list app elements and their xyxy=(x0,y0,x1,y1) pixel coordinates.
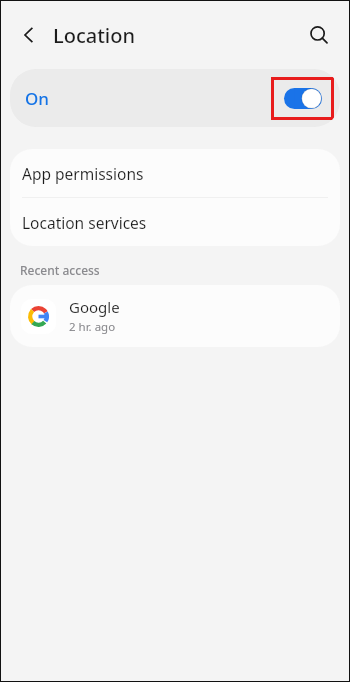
button[interactable]: Location services xyxy=(10,198,340,246)
button[interactable]: On xyxy=(10,69,340,127)
staticText: On xyxy=(25,87,49,110)
button[interactable]: Location toggle, on xyxy=(284,88,322,109)
staticText: Google xyxy=(69,297,120,317)
button[interactable]: Search xyxy=(299,15,339,55)
button[interactable]: Google xyxy=(10,285,340,347)
staticText: App permissions xyxy=(22,163,144,184)
staticText: Location services xyxy=(22,212,147,233)
staticText: 2 hr. ago xyxy=(69,319,116,335)
staticText: Recent access xyxy=(20,262,100,278)
button[interactable]: Back xyxy=(9,15,49,55)
button[interactable]: App permissions xyxy=(10,149,340,197)
staticText: Location xyxy=(53,22,135,49)
